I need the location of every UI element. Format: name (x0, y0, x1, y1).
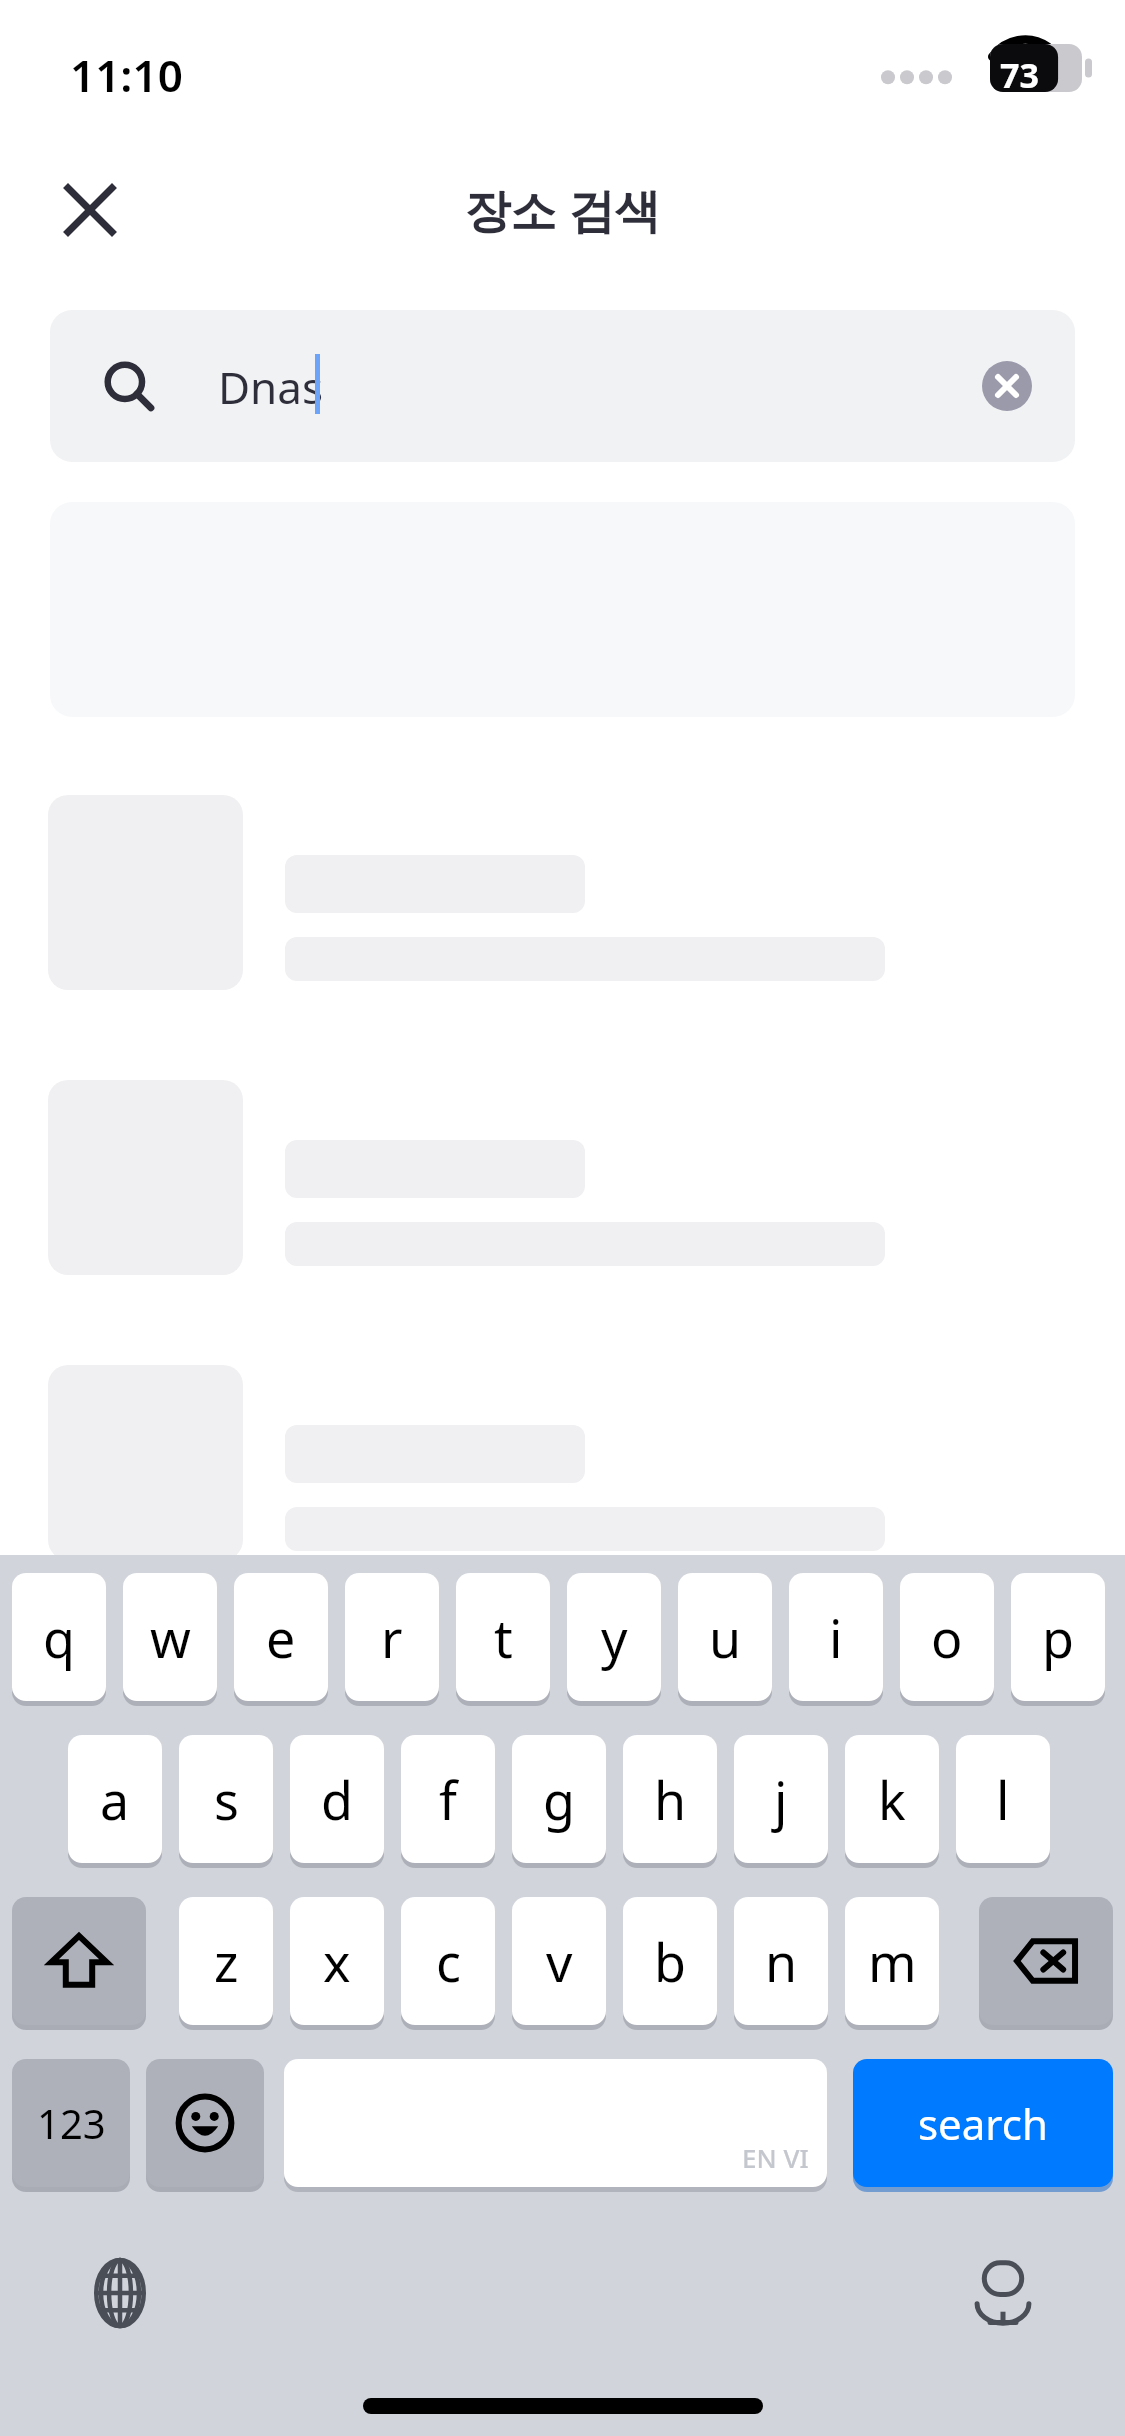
staticText: o (931, 1602, 963, 1673)
button[interactable]: x (290, 1897, 384, 2025)
button[interactable]: n (734, 1897, 828, 2025)
staticText: r (381, 1602, 403, 1673)
button[interactable]: a (68, 1735, 162, 1863)
button[interactable]: t (456, 1573, 550, 1701)
staticText: c (436, 1926, 461, 1997)
button[interactable]: c (401, 1897, 495, 2025)
button[interactable]: q (12, 1573, 106, 1701)
button[interactable]: s (179, 1735, 273, 1863)
button[interactable]: Voice input (955, 2245, 1051, 2341)
staticText: n (765, 1926, 798, 1997)
button[interactable]: Shift (12, 1897, 146, 2025)
staticText: y (601, 1602, 628, 1673)
button[interactable]: g (512, 1735, 606, 1863)
button[interactable]: m (845, 1897, 939, 2025)
staticText: 73 (1000, 52, 1039, 98)
staticText: x (323, 1926, 351, 1997)
staticText: EN VI (742, 2140, 809, 2175)
staticText: w (150, 1602, 191, 1673)
staticText: search (918, 2095, 1048, 2152)
staticText: p (1042, 1602, 1074, 1673)
staticText: v (546, 1926, 573, 1997)
button[interactable]: Space (284, 2059, 827, 2187)
staticText: q (43, 1602, 75, 1673)
staticText: m (868, 1926, 917, 1997)
button[interactable]: h (623, 1735, 717, 1863)
button[interactable] (0, 1080, 1125, 1280)
button[interactable]: v (512, 1897, 606, 2025)
button[interactable]: p (1011, 1573, 1105, 1701)
button[interactable]: r (345, 1573, 439, 1701)
staticText: f (439, 1764, 457, 1835)
staticText: h (654, 1764, 687, 1835)
staticText: u (709, 1602, 742, 1673)
button[interactable]: z (179, 1897, 273, 2025)
button[interactable] (0, 795, 1125, 995)
button[interactable]: k (845, 1735, 939, 1863)
staticText: z (214, 1926, 239, 1997)
staticText: t (494, 1602, 513, 1673)
staticText: g (543, 1764, 575, 1835)
button[interactable]: i (789, 1573, 883, 1701)
button[interactable]: Backspace (979, 1897, 1113, 2025)
staticText: e (266, 1602, 296, 1673)
staticText: s (214, 1764, 239, 1835)
button[interactable]: e (234, 1573, 328, 1701)
button[interactable]: o (900, 1573, 994, 1701)
button[interactable]: search (853, 2059, 1113, 2187)
staticText: d (321, 1764, 353, 1835)
staticText: 11:10 (70, 45, 183, 105)
staticText: 123 (37, 2096, 106, 2150)
button[interactable] (0, 1365, 1125, 1565)
button[interactable]: j (734, 1735, 828, 1863)
staticText: l (996, 1764, 1010, 1835)
staticText: Dnas (218, 357, 324, 417)
button[interactable]: d (290, 1735, 384, 1863)
button[interactable]: u (678, 1573, 772, 1701)
button[interactable]: Close (40, 160, 140, 260)
button[interactable]: Dnas (50, 310, 1075, 462)
button[interactable]: l (956, 1735, 1050, 1863)
button[interactable]: b (623, 1897, 717, 2025)
button[interactable]: Clear text (979, 358, 1035, 414)
button[interactable]: f (401, 1735, 495, 1863)
staticText: b (654, 1926, 686, 1997)
button[interactable]: w (123, 1573, 217, 1701)
staticText: 장소 검색 (0, 178, 1125, 241)
button[interactable]: Emoji (146, 2059, 264, 2187)
button[interactable]: Change keyboard (72, 2245, 168, 2341)
staticText: a (100, 1764, 130, 1835)
staticText: j (774, 1764, 788, 1835)
button[interactable]: Numbers (12, 2059, 130, 2187)
staticText: i (829, 1602, 843, 1673)
staticText: k (878, 1764, 906, 1835)
button[interactable]: y (567, 1573, 661, 1701)
